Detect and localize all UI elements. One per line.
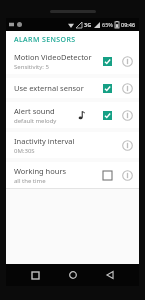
staticText: Use external sensor	[14, 83, 84, 93]
staticText: 09:46	[121, 21, 136, 28]
other: Melody	[76, 109, 88, 121]
staticText: ALARM SENSORS	[14, 35, 76, 45]
button[interactable]: Working hours	[6, 162, 139, 188]
button[interactable]: Toggle Working hours	[103, 171, 112, 180]
button[interactable]: Info about Inactivity interval	[119, 137, 135, 153]
staticText: Alert sound	[14, 106, 55, 116]
staticText: default melody	[14, 117, 57, 125]
staticText: 3G	[84, 21, 92, 28]
button[interactable]: Recent apps	[26, 266, 44, 284]
button[interactable]: Inactivity interval	[6, 132, 139, 158]
button[interactable]: Alert sound	[6, 102, 139, 128]
button[interactable]: Use external sensor	[6, 78, 139, 98]
staticText: Motion VideoDetector	[14, 52, 92, 62]
button[interactable]: Back	[101, 266, 119, 284]
button[interactable]: Toggle Alert sound	[103, 111, 112, 120]
staticText: all the time	[14, 177, 46, 185]
staticText: 0M:30S	[14, 147, 35, 155]
staticText: Inactivity interval	[14, 136, 75, 146]
button[interactable]: Toggle Use external sensor	[103, 84, 112, 93]
staticText: Working hours	[14, 166, 67, 176]
button[interactable]: Info about Working hours	[119, 167, 135, 183]
staticText: 65%	[102, 21, 113, 28]
button[interactable]: Motion VideoDetector	[6, 48, 139, 74]
button[interactable]: Toggle Motion VideoDetector	[103, 57, 112, 66]
button[interactable]: Home	[64, 266, 82, 284]
button[interactable]: Info about Motion VideoDetector	[119, 53, 135, 69]
button[interactable]: Info about Alert sound	[119, 107, 135, 123]
button[interactable]: Info about Use external sensor	[119, 80, 135, 96]
staticText: Sensitivity: 5	[14, 63, 49, 71]
